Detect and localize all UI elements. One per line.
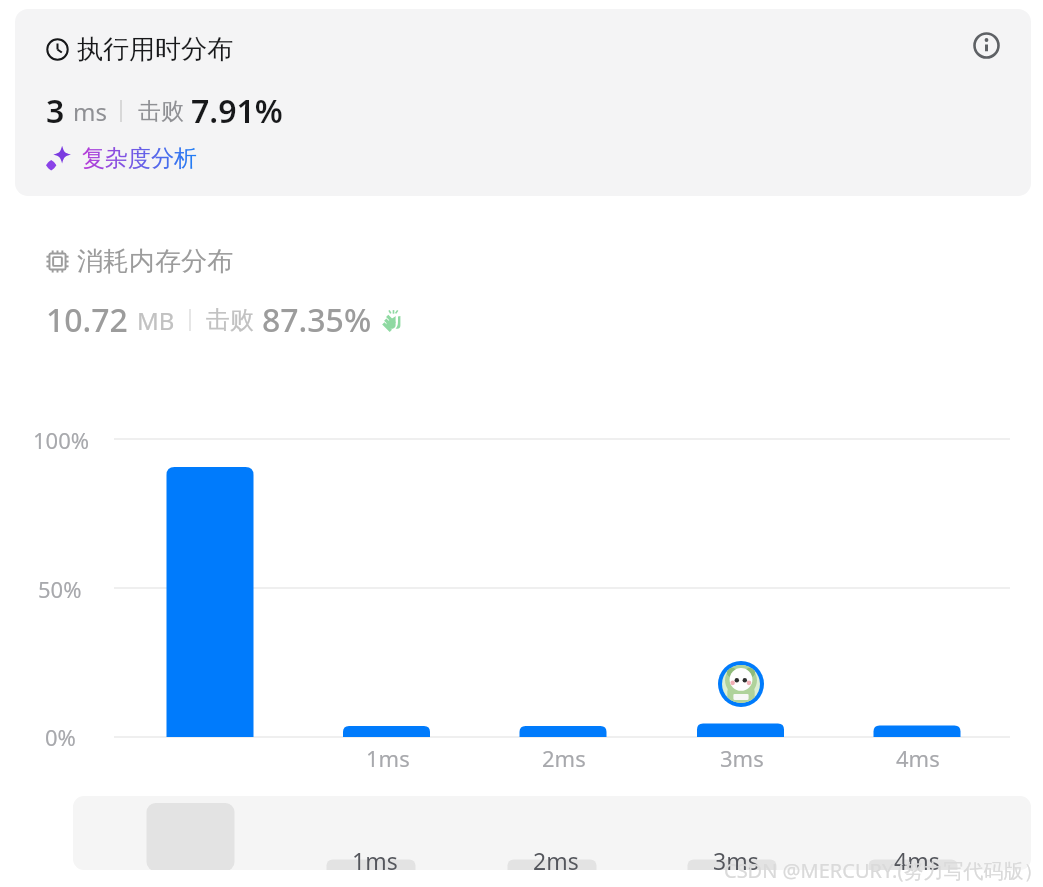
staticText: 3ms bbox=[713, 845, 759, 876]
staticText: 2ms bbox=[542, 743, 586, 773]
staticText: 100% bbox=[33, 425, 90, 455]
button[interactable]: Info bbox=[958, 17, 1015, 74]
staticText: 50% bbox=[38, 574, 82, 604]
button[interactable] bbox=[73, 796, 1031, 870]
button[interactable]: Your submission bbox=[718, 661, 764, 707]
staticText: 4ms bbox=[894, 845, 940, 876]
staticText: CSDN @MERCURY.(努力写代码版） bbox=[724, 857, 1043, 884]
staticText: 消耗内存分布 bbox=[77, 245, 233, 278]
staticText: 2ms bbox=[533, 845, 579, 876]
staticText: 7.91% bbox=[191, 89, 283, 133]
staticText: 1ms bbox=[366, 743, 410, 773]
staticText: 3 bbox=[46, 89, 65, 133]
staticText: MB bbox=[137, 304, 175, 337]
staticText: 87.35% bbox=[262, 298, 372, 342]
staticText: 3ms bbox=[720, 743, 764, 773]
staticText: 0% bbox=[45, 722, 76, 752]
staticText: ms bbox=[73, 95, 107, 128]
staticText: 4ms bbox=[896, 743, 940, 773]
staticText: 复杂度分析 bbox=[82, 144, 197, 173]
staticText: 10.72 bbox=[46, 298, 128, 342]
staticText: 执行用时分布 bbox=[77, 33, 233, 66]
button[interactable]: 复杂度分析 bbox=[46, 144, 197, 173]
staticText: 1ms bbox=[352, 845, 398, 876]
button[interactable]: 执行用时分布 bbox=[15, 9, 1031, 196]
staticText: 击败 bbox=[138, 97, 184, 126]
staticText: 击败 bbox=[206, 305, 254, 335]
